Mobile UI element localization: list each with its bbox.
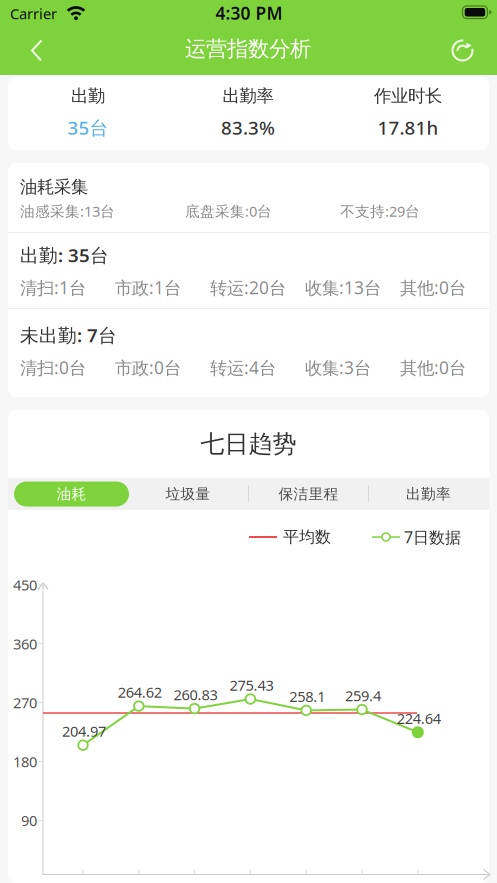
staticText: 35台: [67, 115, 108, 140]
staticText: 七日趋势: [200, 429, 296, 459]
button[interactable]: 出勤率: [369, 478, 488, 510]
button[interactable]: Back: [18, 33, 54, 67]
staticText: 作业时长: [374, 85, 442, 107]
staticText: 垃圾量: [165, 485, 210, 503]
staticText: 不支持:29台: [340, 201, 420, 221]
staticText: 224.64: [397, 708, 441, 728]
button[interactable]: 保洁里程: [249, 478, 368, 510]
button[interactable]: Refresh: [443, 32, 481, 68]
staticText: 其他:0台: [400, 276, 466, 299]
button[interactable]: 油耗: [14, 481, 129, 506]
staticText: 油耗采集: [20, 176, 88, 198]
staticText: 底盘采集:0台: [185, 201, 272, 221]
staticText: 270: [13, 693, 37, 712]
staticText: 市政:1台: [115, 276, 181, 299]
staticText: 4:30 PM: [215, 1, 282, 24]
staticText: 出勤: [71, 85, 105, 107]
staticText: 清扫:1台: [20, 276, 86, 299]
staticText: 264.62: [118, 682, 162, 702]
staticText: 204.97: [62, 721, 106, 741]
staticText: 260.83: [174, 685, 218, 704]
staticText: 450: [13, 575, 37, 595]
staticText: 出勤: 35台: [20, 243, 109, 267]
staticText: 市政:0台: [115, 356, 181, 379]
staticText: 清扫:0台: [20, 356, 86, 379]
staticText: 收集:3台: [305, 356, 371, 379]
staticText: 259.4: [345, 686, 381, 705]
staticText: 保洁里程: [278, 485, 338, 503]
staticText: 运营指数分析: [185, 36, 311, 62]
staticText: 转运:20台: [210, 276, 286, 299]
staticText: 未出勤: 7台: [20, 323, 117, 347]
staticText: 油耗: [56, 485, 86, 503]
staticText: 收集:13台: [305, 276, 381, 299]
staticText: 360: [13, 634, 37, 653]
staticText: 275.43: [229, 675, 273, 695]
staticText: 180: [13, 752, 37, 771]
staticText: 转运:4台: [210, 356, 276, 379]
staticText: 83.3%: [221, 115, 275, 140]
staticText: Carrier: [10, 4, 57, 23]
staticText: 出勤率: [406, 485, 451, 503]
staticText: 7日数据: [404, 526, 461, 548]
staticText: 出勤率: [222, 85, 273, 107]
staticText: 平均数: [283, 527, 331, 547]
button[interactable]: 垃圾量: [129, 478, 247, 510]
staticText: 其他:0台: [400, 356, 466, 379]
staticText: 17.81h: [377, 115, 438, 140]
staticText: 90: [21, 811, 37, 830]
staticText: 258.1: [289, 687, 325, 706]
staticText: 油感采集:13台: [20, 201, 115, 221]
